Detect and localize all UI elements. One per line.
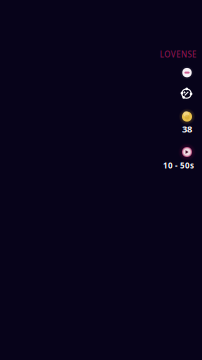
button[interactable]: 38 xyxy=(182,112,192,135)
staticText: 38 xyxy=(182,123,192,135)
staticText: LOVENSE xyxy=(160,49,196,60)
staticText: 10 - 50s xyxy=(163,160,194,171)
button[interactable]: Stop xyxy=(182,68,192,78)
button[interactable]: 10 - 50s xyxy=(163,147,192,171)
button[interactable]: Pattern xyxy=(181,88,192,99)
